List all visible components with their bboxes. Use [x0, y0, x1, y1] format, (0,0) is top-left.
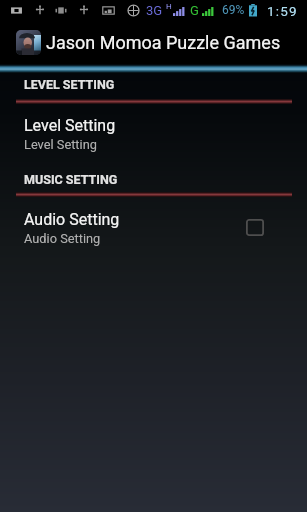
button[interactable]: Audio Setting checkbox	[240, 212, 270, 242]
staticText: Audio Setting	[24, 210, 120, 229]
staticText: Audio Setting	[24, 231, 101, 246]
button[interactable]: Jason Momoa Puzzle Games	[0, 20, 307, 65]
staticText: G	[190, 3, 199, 18]
button[interactable]	[0, 110, 307, 158]
staticText: MUSIC SETTING	[24, 172, 118, 187]
button[interactable]	[0, 203, 307, 251]
staticText: Level Setting	[24, 137, 97, 152]
staticText: 69%	[222, 3, 245, 17]
staticText: Level Setting	[24, 116, 116, 135]
staticText: LEVEL SETTING	[24, 77, 115, 92]
staticText: H	[166, 2, 172, 11]
staticText: Jason Momoa Puzzle Games	[46, 32, 281, 53]
staticText: 1:59	[267, 3, 298, 19]
staticText: 3G	[146, 3, 163, 18]
